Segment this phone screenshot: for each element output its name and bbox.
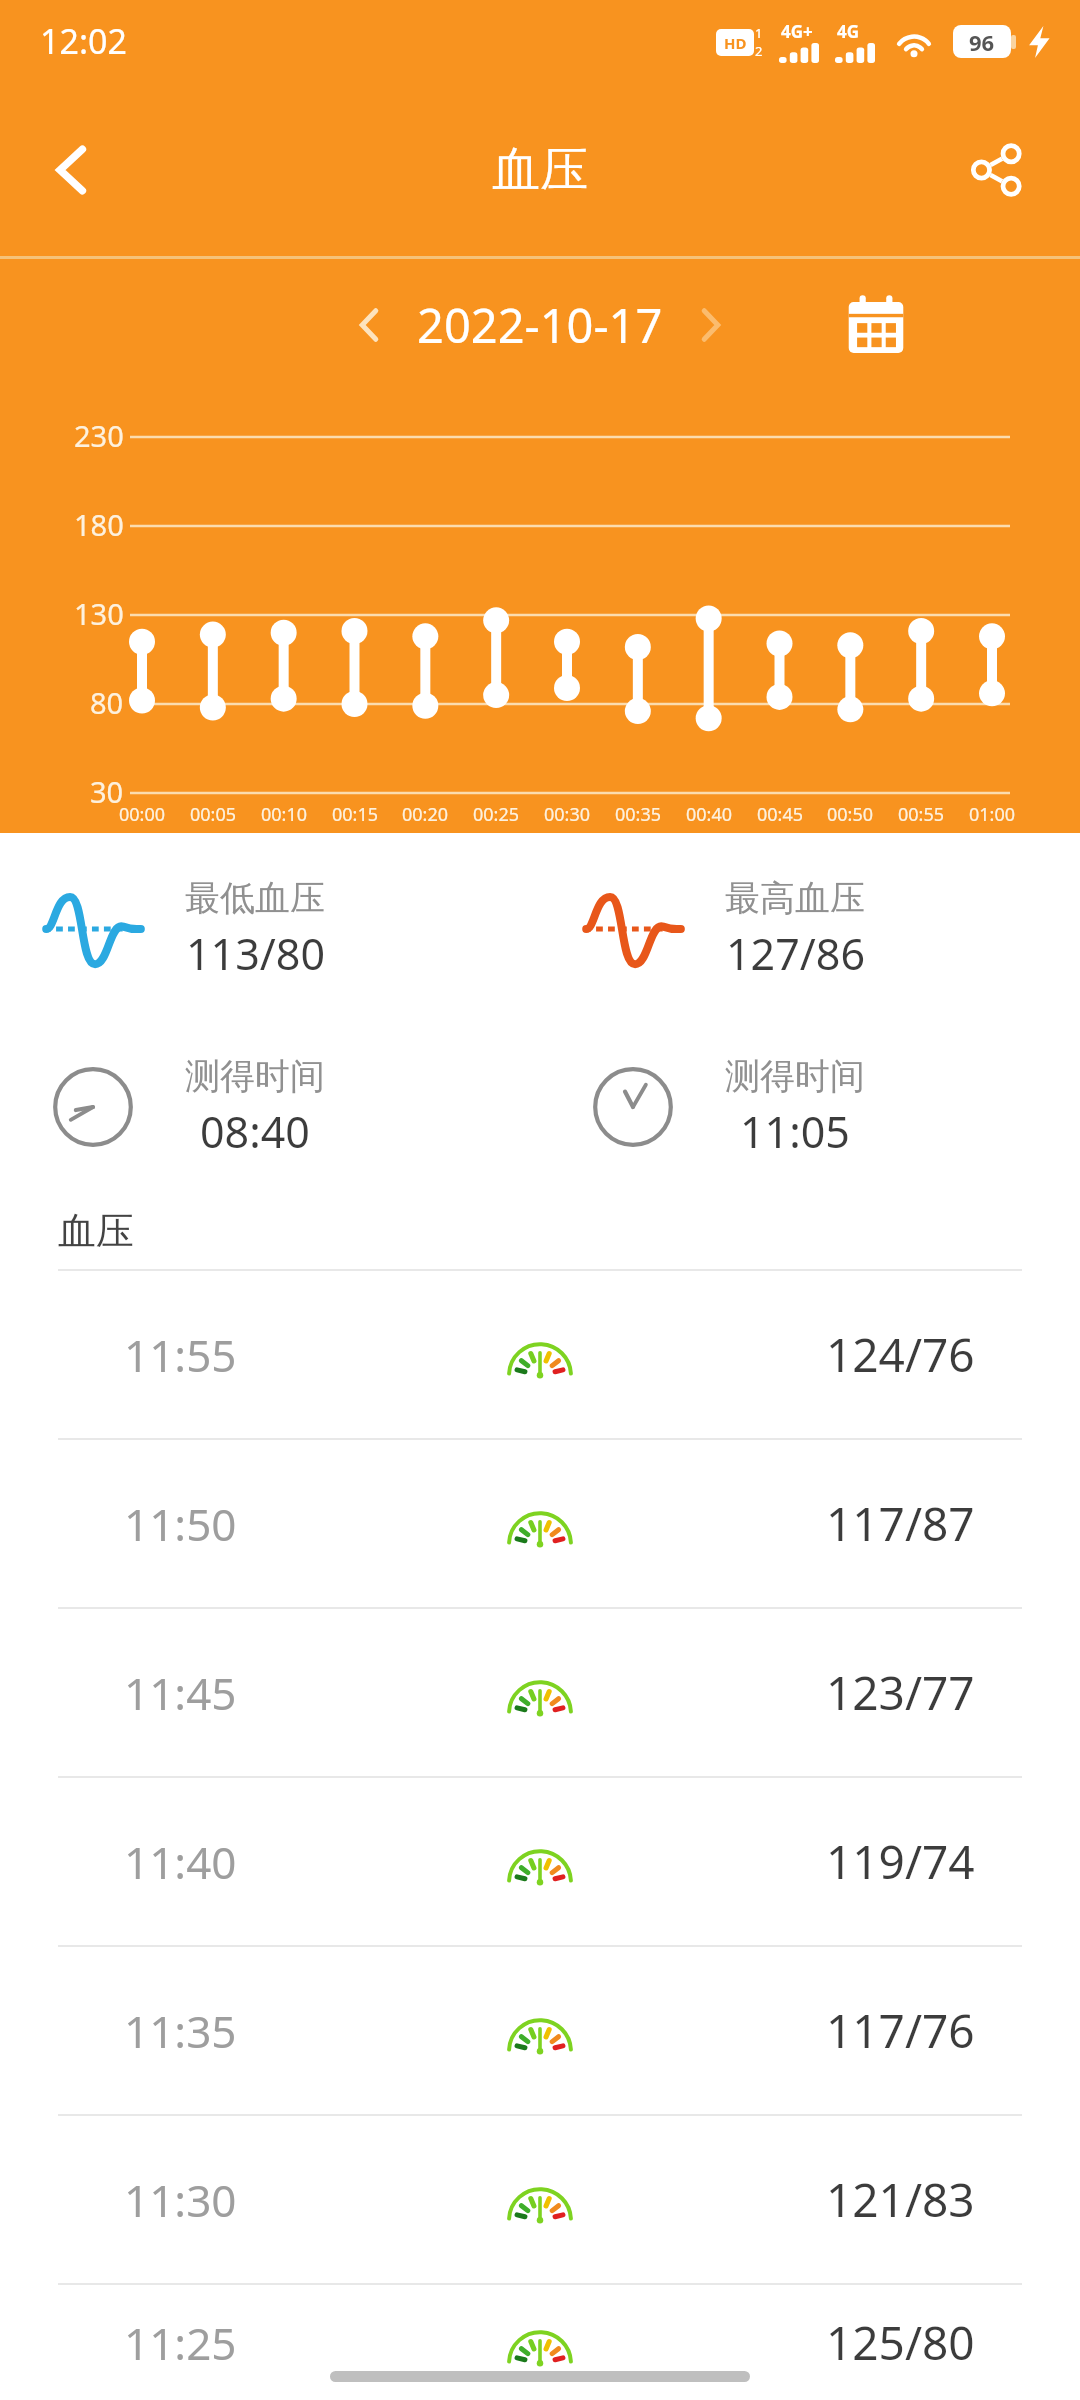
- button[interactable]: 测得时间: [0, 1043, 540, 1171]
- staticText: 124/76: [826, 1323, 975, 1386]
- staticText: 测得时间: [725, 1054, 865, 1098]
- staticText: 00:20: [402, 802, 449, 827]
- button[interactable]: 11:30: [0, 2116, 1080, 2283]
- button[interactable]: Next day: [671, 285, 751, 365]
- staticText: 96: [969, 27, 995, 57]
- button[interactable]: 11:50: [0, 1440, 1080, 1607]
- staticText: 11:55: [124, 1325, 237, 1385]
- staticText: 127/86: [726, 924, 865, 983]
- staticText: 1: [755, 24, 763, 42]
- button[interactable]: Open calendar: [828, 277, 924, 373]
- button[interactable]: Share: [944, 118, 1048, 222]
- staticText: 00:40: [686, 802, 733, 827]
- staticText: 11:50: [124, 1494, 237, 1554]
- button[interactable]: 测得时间: [540, 1043, 1080, 1171]
- staticText: 00:05: [190, 802, 237, 827]
- staticText: 00:00: [119, 802, 166, 827]
- button[interactable]: 11:25: [0, 2285, 1080, 2400]
- staticText: 11:35: [124, 2001, 237, 2061]
- staticText: 180: [74, 505, 124, 544]
- staticText: 血压: [58, 1207, 134, 1255]
- staticText: 00:30: [544, 802, 591, 827]
- staticText: 123/77: [826, 1661, 975, 1724]
- staticText: 12:02: [40, 18, 127, 64]
- staticText: 11:05: [740, 1102, 850, 1161]
- staticText: 00:50: [827, 802, 874, 827]
- button[interactable]: 11:35: [0, 1947, 1080, 2114]
- staticText: 00:25: [473, 802, 520, 827]
- staticText: 4G: [837, 20, 860, 43]
- staticText: 08:40: [200, 1102, 310, 1161]
- staticText: 125/80: [826, 2311, 975, 2374]
- staticText: 4G+: [781, 20, 813, 43]
- staticText: 119/74: [826, 1830, 975, 1893]
- staticText: 血压: [492, 140, 588, 200]
- staticText: 测得时间: [185, 1054, 325, 1098]
- staticText: 230: [74, 416, 124, 455]
- staticText: 30: [90, 772, 124, 811]
- staticText: 130: [74, 594, 124, 633]
- staticText: 01:00: [969, 802, 1016, 827]
- staticText: 11:40: [124, 1832, 237, 1892]
- staticText: 最高血压: [725, 876, 865, 920]
- staticText: 2: [755, 42, 763, 60]
- button[interactable]: 11:55: [0, 1271, 1080, 1438]
- button[interactable]: Previous day: [329, 285, 409, 365]
- staticText: 117/76: [826, 1999, 975, 2062]
- staticText: 11:25: [124, 2313, 237, 2373]
- button[interactable]: Back: [20, 118, 124, 222]
- staticText: HD: [724, 33, 747, 53]
- staticText: 11:30: [124, 2170, 237, 2230]
- staticText: 00:15: [332, 802, 379, 827]
- staticText: 00:10: [261, 802, 308, 827]
- staticText: 2022-10-17: [417, 293, 663, 357]
- staticText: 最低血压: [185, 876, 325, 920]
- staticText: 113/80: [186, 924, 325, 983]
- staticText: 00:35: [615, 802, 662, 827]
- button[interactable]: 最高血压: [540, 865, 1080, 993]
- staticText: 80: [90, 683, 124, 722]
- staticText: 121/83: [826, 2168, 975, 2231]
- button[interactable]: 11:40: [0, 1778, 1080, 1945]
- button[interactable]: 最低血压: [0, 865, 540, 993]
- staticText: 11:45: [124, 1663, 237, 1723]
- staticText: 00:45: [757, 802, 804, 827]
- staticText: 117/87: [826, 1492, 975, 1555]
- staticText: 00:55: [898, 802, 945, 827]
- button[interactable]: 11:45: [0, 1609, 1080, 1776]
